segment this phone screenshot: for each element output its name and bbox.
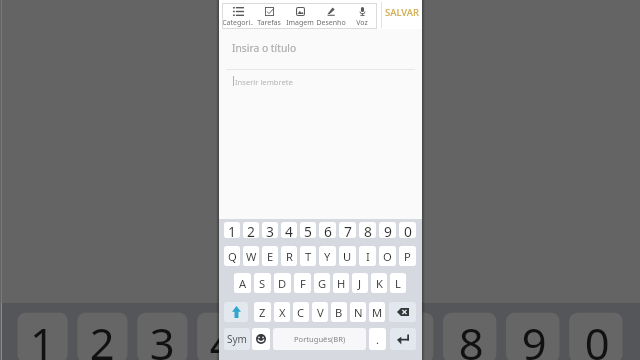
staticText: F (300, 276, 306, 291)
staticText: 4 (210, 312, 235, 360)
staticText: Inserir lembrete (235, 77, 293, 87)
staticText: 9 (384, 222, 392, 238)
staticText: Desenho (316, 18, 346, 28)
button[interactable]: F (294, 273, 311, 293)
staticText: 6 (333, 312, 358, 360)
button[interactable]: Enter (390, 328, 416, 350)
staticText: Y (324, 249, 331, 264)
button[interactable]: A (234, 273, 251, 293)
staticText: R (286, 249, 293, 264)
staticText: X (279, 305, 286, 320)
button[interactable]: H (333, 273, 349, 293)
button[interactable]: Português(BR) (273, 328, 366, 350)
button[interactable]: Z (254, 302, 271, 322)
button[interactable]: M (369, 302, 385, 322)
button[interactable]: V (312, 302, 328, 322)
button[interactable]: L (390, 273, 406, 293)
button[interactable]: D (274, 273, 291, 293)
staticText: M (372, 305, 383, 320)
staticText: 0 (404, 222, 412, 238)
button[interactable]: 8 (359, 222, 376, 238)
button[interactable]: Q (224, 246, 240, 266)
button[interactable]: X (274, 302, 290, 322)
staticText: Q (228, 249, 237, 264)
button[interactable]: . (369, 328, 386, 350)
staticText: 7 (344, 222, 352, 238)
button[interactable]: 0 (569, 312, 623, 360)
button[interactable]: O (379, 246, 396, 266)
staticText: A (239, 276, 247, 291)
staticText: C (297, 305, 305, 320)
staticText: Voz (356, 18, 368, 28)
staticText: Z (259, 305, 266, 320)
button[interactable]: 9 (379, 222, 396, 238)
staticText: N (354, 305, 363, 320)
staticText: G (318, 276, 327, 291)
staticText: E (267, 249, 274, 264)
staticText: S (259, 276, 266, 291)
staticText: Português(BR) (294, 334, 346, 344)
staticText: Imagem (286, 18, 314, 28)
button[interactable]: E (262, 246, 278, 266)
button[interactable]: 2 (77, 312, 128, 360)
button[interactable]: 6 (317, 312, 370, 360)
button[interactable]: Emoji (252, 328, 270, 350)
staticText: D (278, 276, 287, 291)
button[interactable]: Imagem (284, 3, 315, 29)
staticText: 1 (30, 312, 55, 360)
staticText: W (246, 249, 257, 264)
button[interactable]: N (350, 302, 366, 322)
staticText: K (376, 276, 383, 291)
button[interactable]: 7 (380, 312, 433, 360)
staticText: Categori... (222, 18, 253, 28)
button[interactable]: T (300, 246, 316, 266)
staticText: T (305, 249, 312, 264)
button[interactable]: 5 (257, 312, 307, 360)
button[interactable]: 4 (281, 222, 297, 238)
button[interactable]: R (281, 246, 297, 266)
staticText: O (383, 249, 392, 264)
button[interactable]: 3 (137, 312, 187, 360)
button[interactable]: 7 (339, 222, 356, 238)
staticText: Sym (227, 332, 247, 346)
staticText: 0 (585, 312, 610, 360)
button[interactable]: Y (319, 246, 336, 266)
button[interactable]: 9 (506, 312, 560, 360)
button[interactable]: J (352, 273, 368, 293)
button[interactable]: Tarefas (253, 3, 284, 29)
staticText: L (395, 276, 401, 291)
staticText: Tarefas (257, 18, 281, 28)
button[interactable]: U (339, 246, 356, 266)
button[interactable]: W (243, 246, 259, 266)
button[interactable]: 1 (17, 312, 68, 360)
staticText: 2 (90, 312, 115, 360)
button[interactable]: Categori... (222, 3, 253, 29)
staticText: U (343, 249, 352, 264)
button[interactable]: SALVAR (383, 2, 422, 23)
button[interactable]: Sym (224, 328, 250, 350)
button[interactable]: 3 (262, 222, 278, 238)
button[interactable]: 6 (319, 222, 336, 238)
staticText: 6 (324, 222, 332, 238)
button[interactable]: K (371, 273, 387, 293)
button[interactable]: G (314, 273, 330, 293)
button[interactable]: Desenho (315, 3, 346, 29)
button[interactable]: I (359, 246, 376, 266)
button[interactable]: 5 (300, 222, 316, 238)
button[interactable]: Backspace (389, 302, 416, 322)
button[interactable]: P (399, 246, 416, 266)
button[interactable]: 4 (197, 312, 247, 360)
staticText: SALVAR (385, 6, 420, 19)
button[interactable]: 1 (224, 222, 240, 238)
button[interactable]: Shift (224, 302, 248, 322)
staticText: 3 (150, 312, 175, 360)
button[interactable]: 2 (243, 222, 259, 238)
button[interactable]: S (254, 273, 271, 293)
button[interactable]: 8 (443, 312, 497, 360)
button[interactable]: Voz (346, 3, 377, 29)
button[interactable]: C (293, 302, 309, 322)
button[interactable]: B (331, 302, 347, 322)
staticText: J (358, 276, 362, 291)
staticText: V (317, 305, 324, 320)
button[interactable]: 0 (399, 222, 416, 238)
